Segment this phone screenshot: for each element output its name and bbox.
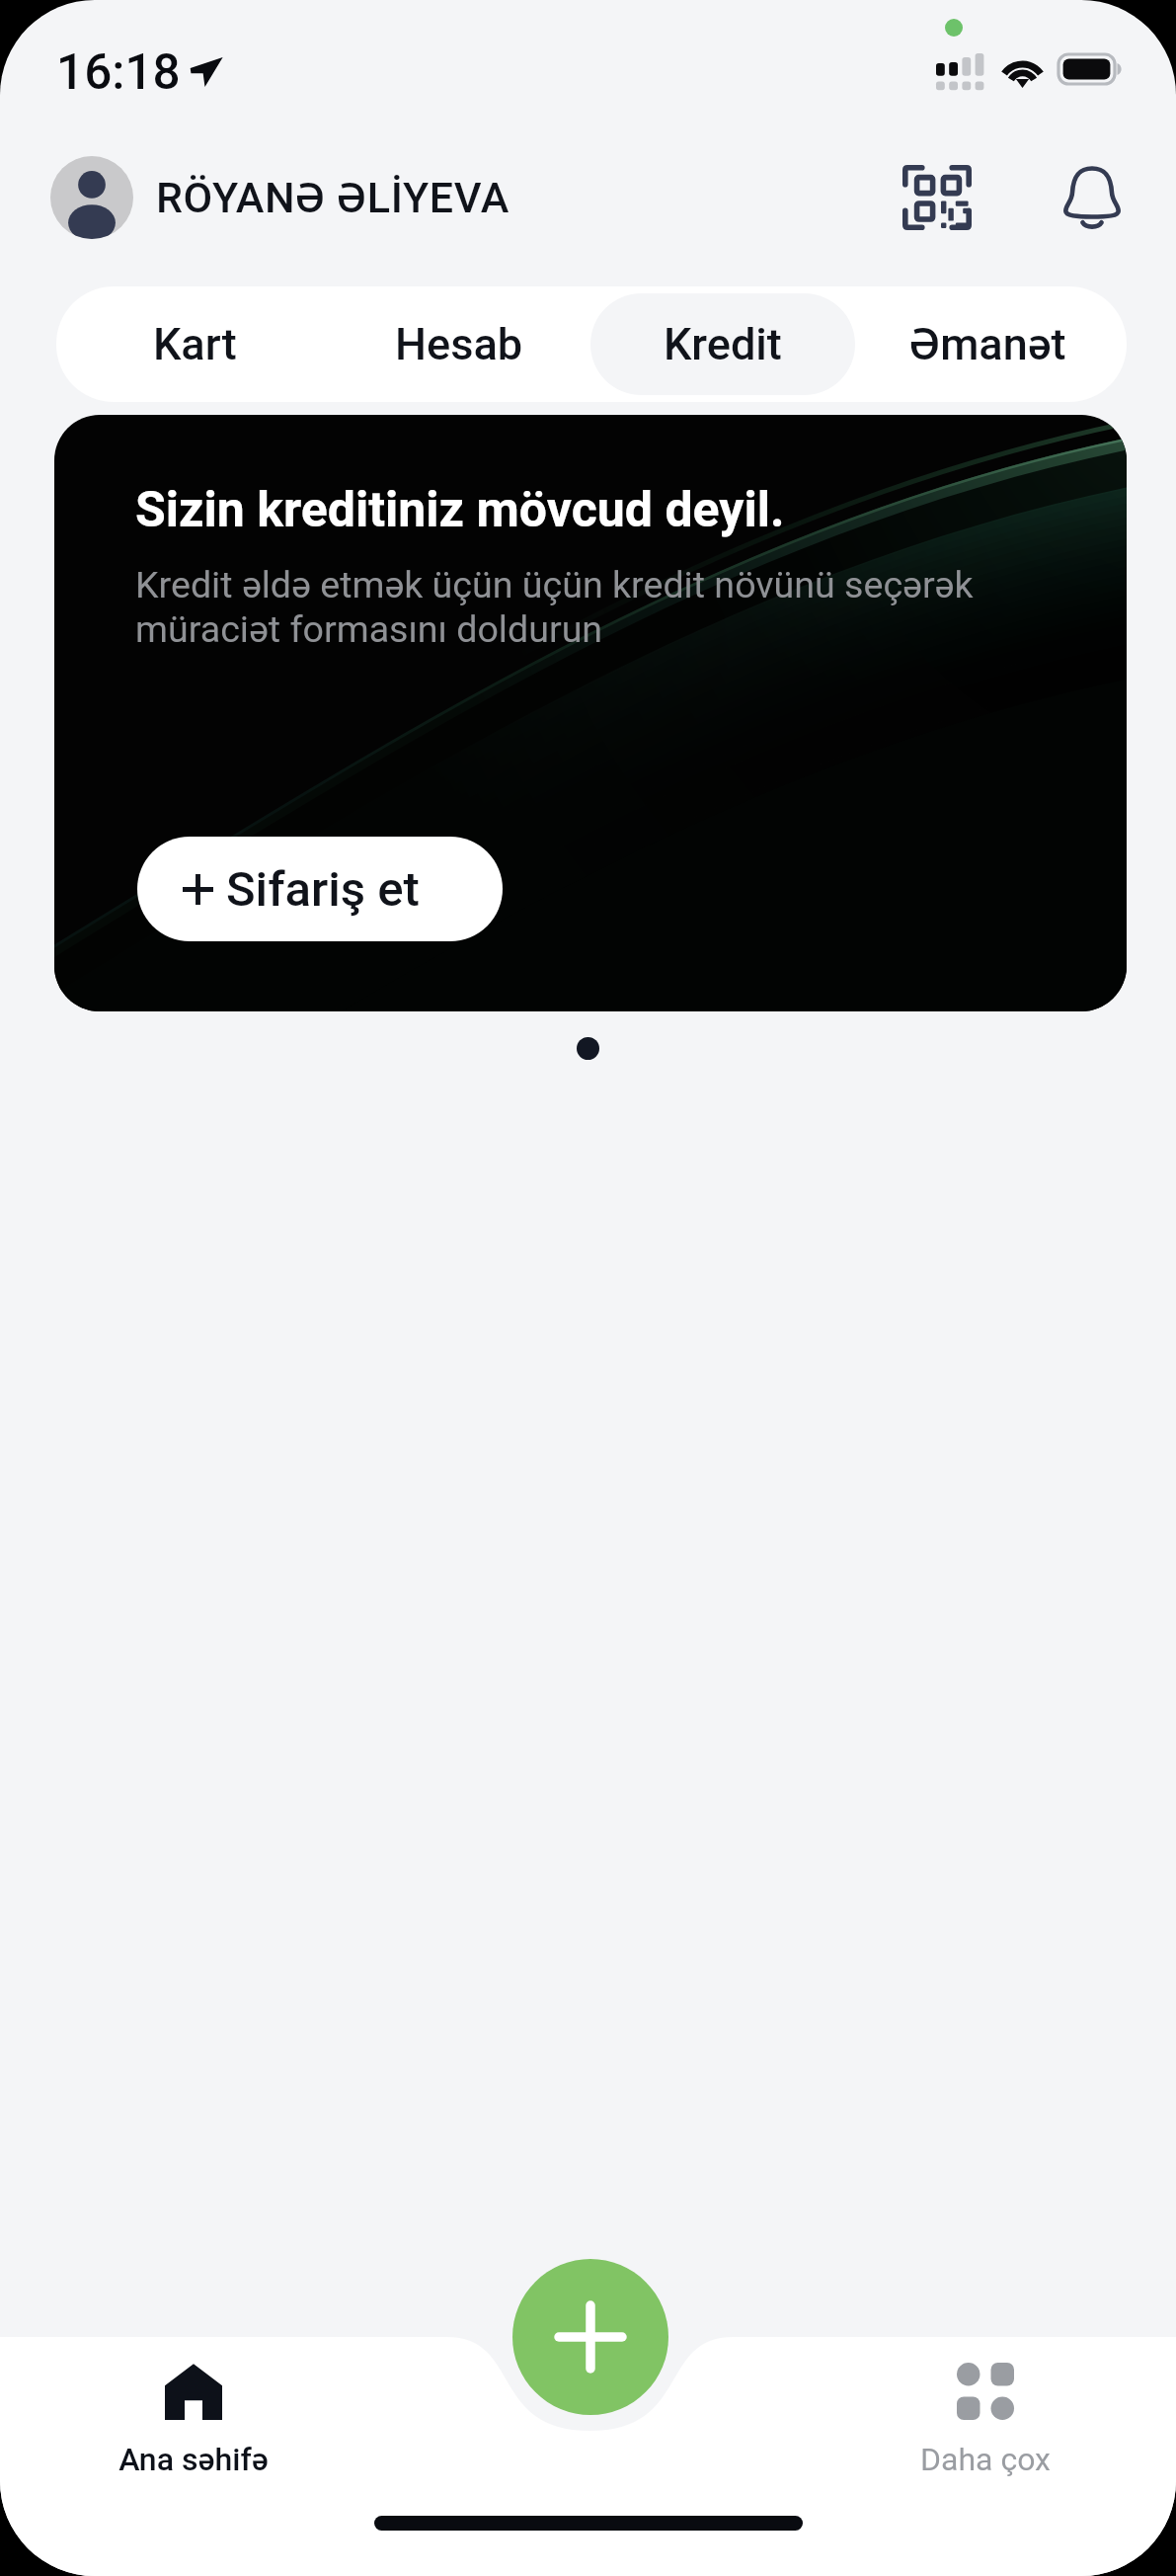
- staticText: Hesab: [395, 318, 523, 370]
- staticText: Sifariş et: [226, 861, 420, 918]
- staticText: Ana səhifə: [118, 2441, 269, 2478]
- button[interactable]: Sizin kreditiniz mövcud deyil.: [54, 415, 1127, 1011]
- button[interactable]: Əmanət: [855, 293, 1120, 395]
- button[interactable]: Scan QR code: [896, 156, 979, 239]
- staticText: RÖYANƏ ƏLİYEVA: [156, 173, 510, 222]
- button[interactable]: Add: [512, 2259, 668, 2415]
- button[interactable]: Hesab: [327, 293, 590, 395]
- staticText: Kart: [153, 318, 237, 370]
- staticText: Kredit əldə etmək üçün üçün kredit növün…: [135, 563, 974, 651]
- button[interactable]: Notifications: [1051, 156, 1134, 239]
- staticText: Əmanət: [909, 318, 1066, 370]
- button[interactable]: Kredit: [590, 293, 855, 395]
- button[interactable]: Kart: [63, 293, 327, 395]
- staticText: Sizin kreditiniz mövcud deyil.: [135, 481, 785, 539]
- staticText: 16:18: [56, 43, 181, 101]
- staticText: Kredit: [664, 318, 782, 370]
- button[interactable]: Daha çox: [887, 2363, 1084, 2478]
- staticText: Daha çox: [920, 2441, 1051, 2478]
- button[interactable]: Sifariş et: [137, 837, 503, 941]
- button[interactable]: Ana səhifə: [95, 2363, 292, 2478]
